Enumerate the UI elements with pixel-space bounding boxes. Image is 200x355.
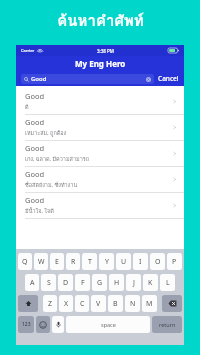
button[interactable]: Good	[21, 74, 154, 84]
staticText: B	[113, 299, 118, 309]
staticText: Z	[48, 299, 53, 309]
button[interactable]: R	[66, 253, 80, 270]
button[interactable]: W	[34, 253, 48, 270]
button[interactable]: Good	[16, 115, 184, 140]
staticText: W	[38, 257, 45, 267]
staticText: Good	[25, 169, 45, 179]
button[interactable]: E	[50, 253, 64, 270]
button[interactable]: B	[108, 295, 123, 312]
staticText: H	[114, 278, 120, 288]
button[interactable]: T	[82, 253, 97, 270]
staticText: เก่ง, ฉลาด, มีความสามารถ	[25, 155, 90, 164]
button[interactable]: Shift	[18, 295, 38, 312]
staticText: E	[55, 257, 59, 267]
staticText: F	[81, 278, 85, 288]
button[interactable]: F	[75, 274, 90, 291]
button[interactable]: return	[152, 316, 182, 333]
staticText: Good	[25, 143, 45, 153]
button[interactable]: Good	[16, 141, 184, 166]
staticText: U	[121, 257, 127, 267]
staticText: Good	[25, 91, 45, 101]
button[interactable]: H	[109, 274, 124, 291]
button[interactable]: Numbers	[18, 316, 34, 333]
button[interactable]: Clear text	[146, 77, 151, 82]
staticText: 3:38 PM	[97, 48, 114, 54]
button[interactable]: Cancel	[158, 74, 179, 83]
staticText: Y	[105, 257, 109, 267]
staticText: A	[30, 278, 35, 288]
button[interactable]: I	[133, 253, 148, 270]
button[interactable]: Emoji	[36, 316, 50, 333]
staticText: return	[159, 321, 176, 328]
staticText: ซื่อสัตย์งาม, ซึ่งทำงาน	[25, 181, 78, 190]
button[interactable]: Backspace	[162, 295, 182, 312]
button[interactable]: Dictate	[52, 316, 64, 333]
staticText: Q	[22, 257, 28, 267]
staticText: ค้นหาคำศัพท์	[57, 9, 144, 33]
button[interactable]: M	[142, 295, 157, 312]
staticText: K	[148, 278, 153, 288]
button[interactable]: Q	[18, 253, 32, 270]
staticText: O	[155, 257, 161, 267]
staticText: เหมาะสม, ถูกต้อง	[25, 129, 67, 138]
button[interactable]: K	[143, 274, 158, 291]
button[interactable]: O	[150, 253, 165, 270]
staticText: Good	[25, 195, 45, 205]
staticText: R	[71, 257, 76, 267]
staticText: Carrier	[21, 48, 35, 53]
button[interactable]: C	[75, 295, 89, 312]
staticText: My Eng Hero	[75, 58, 126, 69]
button[interactable]: A	[25, 274, 39, 291]
staticText: M	[146, 299, 153, 309]
button[interactable]: U	[116, 253, 131, 270]
button[interactable]: D	[58, 274, 73, 291]
staticText: G	[97, 278, 103, 288]
staticText: space	[101, 321, 116, 328]
staticText: C	[80, 299, 85, 309]
staticText: S	[47, 278, 51, 288]
staticText: มีน้ำใจ, ใจดี	[25, 207, 54, 216]
staticText: Cancel	[158, 74, 179, 83]
button[interactable]: space	[66, 316, 150, 333]
staticText: X	[64, 299, 69, 309]
button[interactable]: Good	[16, 167, 184, 192]
button[interactable]: Good	[16, 193, 184, 218]
staticText: Good	[25, 117, 45, 127]
staticText: V	[96, 299, 101, 309]
button[interactable]: X	[59, 295, 73, 312]
staticText: N	[130, 299, 136, 309]
button[interactable]: P	[167, 253, 182, 270]
button[interactable]: Y	[99, 253, 114, 270]
staticText: T	[88, 257, 92, 267]
button[interactable]: S	[41, 274, 56, 291]
staticText: 123	[22, 321, 31, 328]
staticText: L	[166, 278, 170, 288]
staticText: P	[172, 257, 177, 267]
button[interactable]: V	[91, 295, 106, 312]
button[interactable]: L	[160, 274, 175, 291]
button[interactable]: Good	[16, 89, 184, 114]
staticText: D	[63, 278, 69, 288]
button[interactable]: Z	[43, 295, 57, 312]
button[interactable]: G	[92, 274, 107, 291]
staticText: Good	[31, 75, 47, 83]
button[interactable]: J	[126, 274, 141, 291]
staticText: J	[133, 278, 135, 288]
staticText: ดี	[25, 103, 29, 112]
staticText: I	[139, 257, 142, 267]
button[interactable]: N	[125, 295, 140, 312]
